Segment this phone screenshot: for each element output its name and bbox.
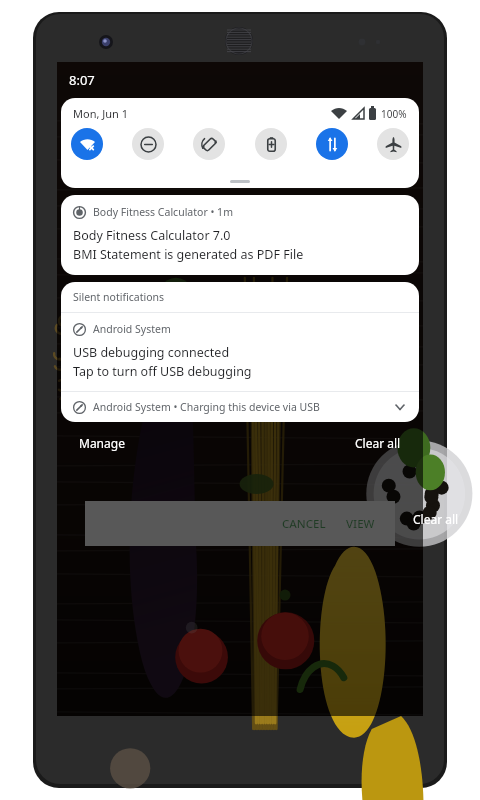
button[interactable]: Android System • Charging this device vi… bbox=[61, 392, 419, 422]
button[interactable]: CANCEL bbox=[272, 508, 336, 540]
staticText: Tap to turn off USB debugging bbox=[73, 363, 252, 380]
staticText: 100% bbox=[381, 107, 407, 121]
staticText: CANCEL bbox=[282, 516, 326, 532]
button[interactable]: Android System bbox=[61, 313, 419, 391]
staticText: Android System • Charging this device vi… bbox=[93, 400, 320, 414]
staticText: VIEW bbox=[346, 516, 375, 532]
staticText: Manage bbox=[79, 435, 125, 451]
staticText: Clear all bbox=[355, 435, 401, 451]
button[interactable]: Silent notifications bbox=[61, 282, 419, 312]
button[interactable]: Body Fitness Calculator • 1m bbox=[61, 195, 419, 275]
other: Expand bbox=[393, 400, 407, 414]
staticText: 8:07 bbox=[69, 71, 95, 89]
button[interactable]: Clear all bbox=[351, 429, 405, 457]
button[interactable]: VIEW bbox=[336, 508, 385, 540]
staticText: Body Fitness Calculator 7.0 bbox=[73, 227, 231, 244]
button[interactable]: Clear all bbox=[413, 511, 459, 527]
button[interactable]: Do not disturb bbox=[132, 128, 164, 160]
button[interactable]: Wi-Fi off bbox=[71, 128, 103, 160]
staticText: Android System bbox=[93, 322, 171, 336]
button[interactable]: Battery saver bbox=[255, 128, 287, 160]
button[interactable]: Manage bbox=[75, 429, 129, 457]
staticText: Mon, Jun 1 bbox=[73, 106, 128, 121]
button[interactable]: Mobile data bbox=[316, 128, 348, 160]
staticText: Body Fitness Calculator • 1m bbox=[93, 205, 233, 219]
button[interactable]: Airplane mode bbox=[377, 128, 409, 160]
staticText: Silent notifications bbox=[73, 290, 165, 304]
staticText: USB debugging connected bbox=[73, 344, 230, 361]
button[interactable]: Auto-rotate bbox=[193, 128, 225, 160]
staticText: BMI Statement is generated as PDF File bbox=[73, 246, 304, 263]
staticText: Clear all bbox=[413, 511, 459, 527]
